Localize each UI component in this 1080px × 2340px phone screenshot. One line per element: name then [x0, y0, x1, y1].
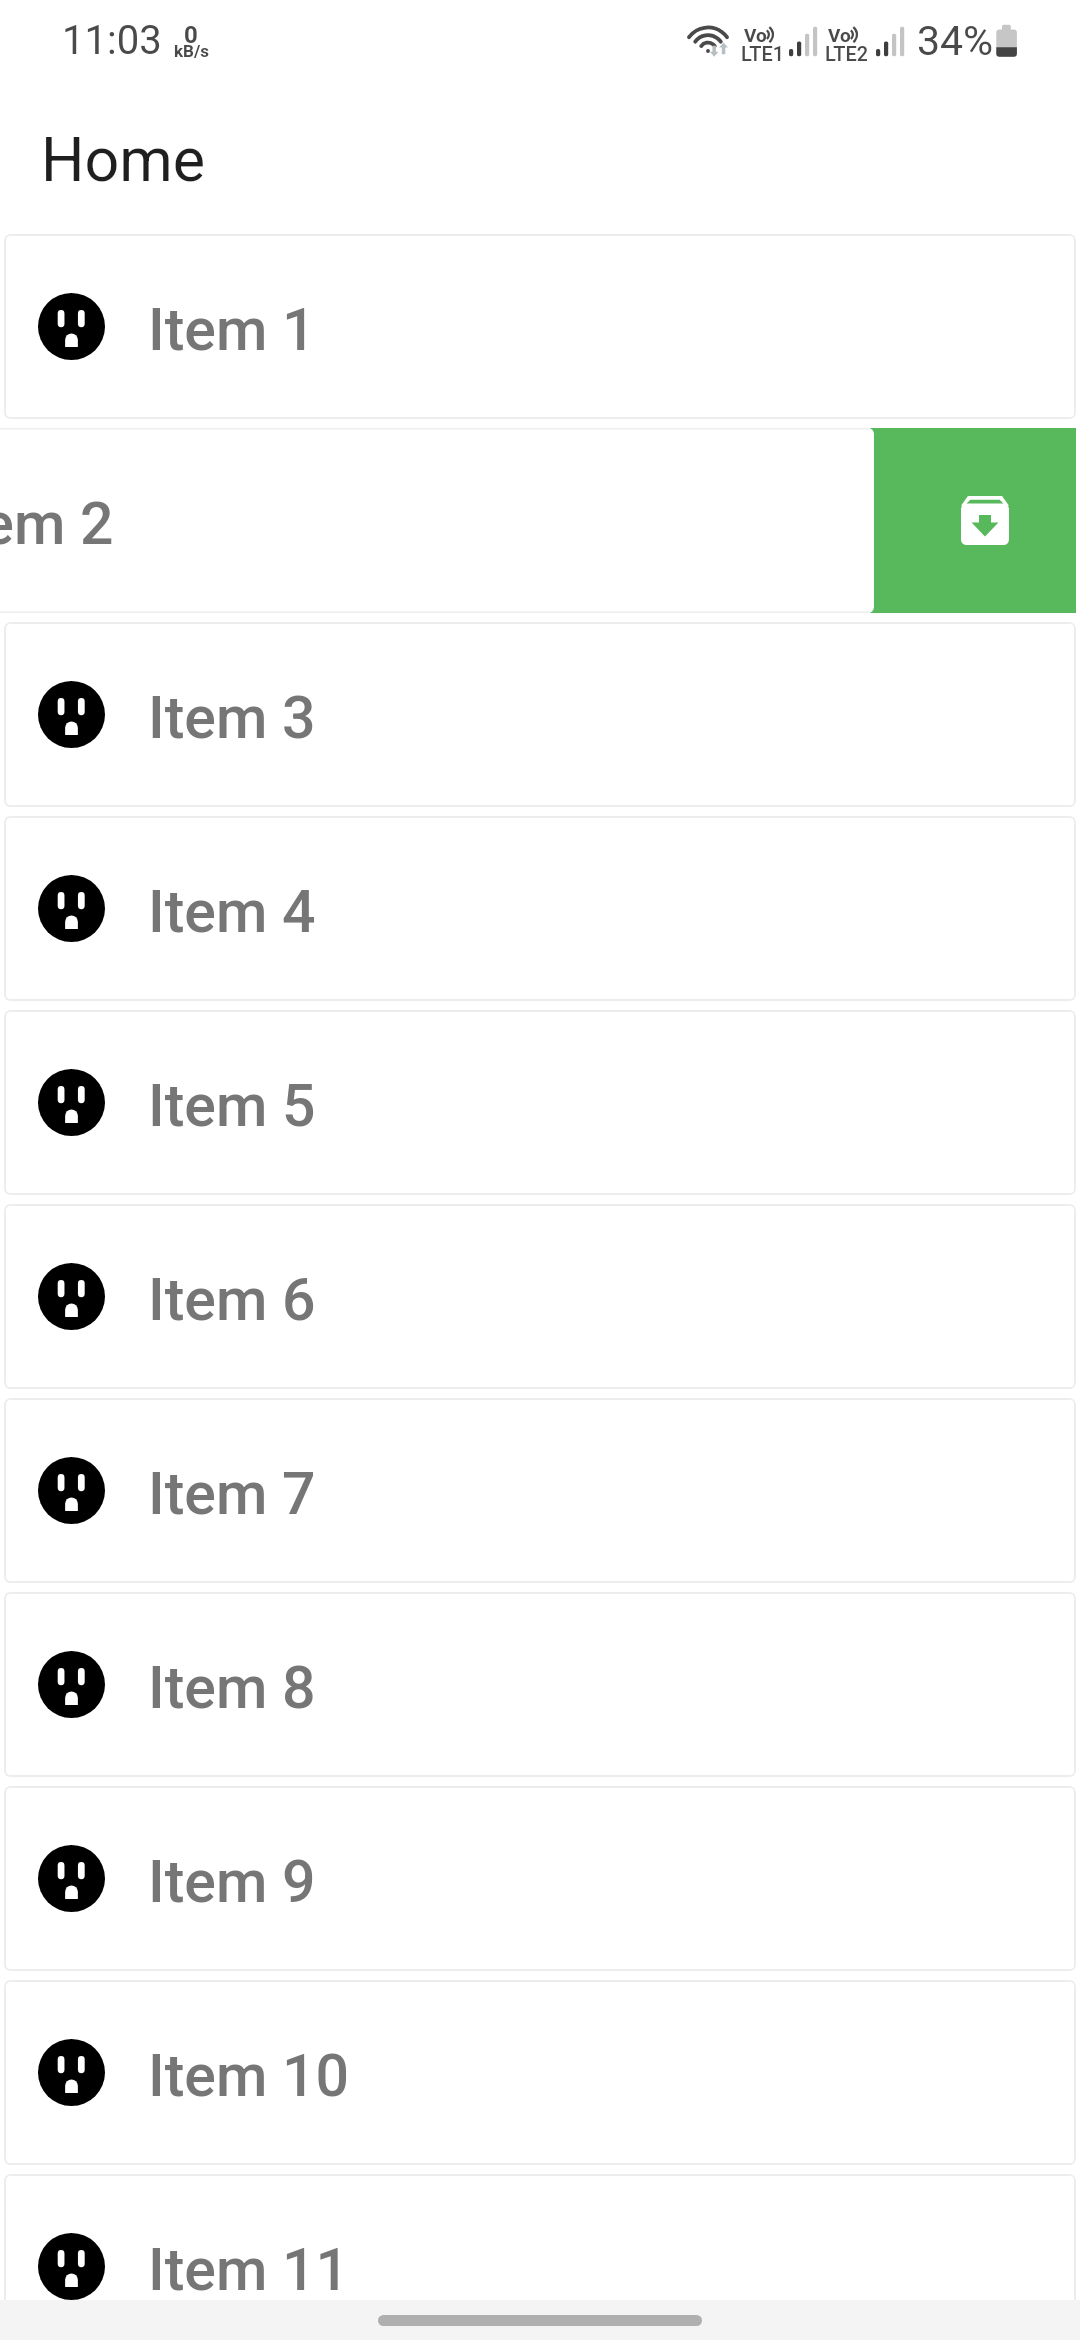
staticText: Item 2	[0, 489, 114, 558]
button[interactable]: Item 1	[4, 234, 1076, 419]
staticText: LTE2	[825, 42, 867, 65]
staticText: Item 3	[148, 683, 316, 752]
staticText: Vo	[744, 24, 767, 46]
button[interactable]: Item 9	[4, 1786, 1076, 1971]
staticText: Item 1	[148, 295, 316, 364]
button[interactable]: Item 8	[4, 1592, 1076, 1777]
button[interactable]: Item 6	[4, 1204, 1076, 1389]
staticText: Item 5	[148, 1071, 316, 1140]
staticText: LTE1	[741, 42, 783, 65]
staticText: Item 9	[148, 1847, 316, 1916]
button[interactable]: Item 2	[0, 428, 874, 613]
button[interactable]: Item 3	[4, 622, 1076, 807]
staticText: 11:03	[62, 17, 162, 64]
staticText: Item 7	[148, 1459, 316, 1528]
staticText: Item 10	[148, 2041, 350, 2110]
button[interactable]: Item 11	[4, 2174, 1076, 2340]
staticText: Home	[41, 124, 206, 195]
button[interactable]: Item 7	[4, 1398, 1076, 1583]
button[interactable]: Item 10	[4, 1980, 1076, 2165]
staticText: Item 11	[148, 2235, 350, 2304]
button[interactable]: Item 4	[4, 816, 1076, 1001]
button[interactable]: Archive	[874, 428, 1076, 613]
staticText: Item 4	[148, 877, 316, 946]
staticText: Item 6	[148, 1265, 316, 1334]
staticText: Vo	[828, 24, 851, 46]
staticText: 34%	[917, 17, 994, 65]
staticText: kB/s	[174, 41, 209, 61]
button[interactable]: Item 5	[4, 1010, 1076, 1195]
staticText: 0	[184, 21, 198, 49]
staticText: Item 8	[148, 1653, 316, 1722]
